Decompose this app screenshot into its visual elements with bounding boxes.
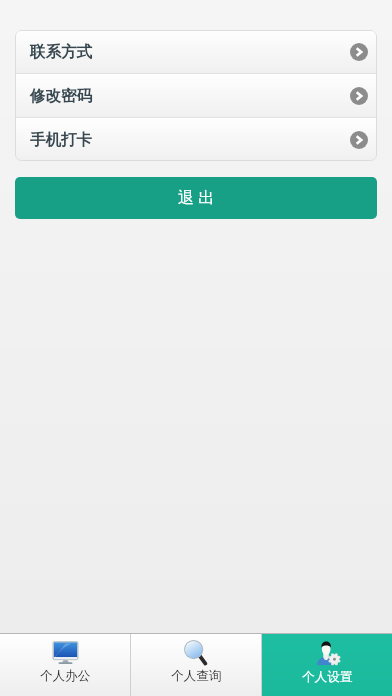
staticText: 个人办公 bbox=[40, 668, 91, 684]
button[interactable]: Personal settings bbox=[262, 634, 392, 696]
staticText: 手机打卡 bbox=[30, 130, 92, 150]
staticText: 退 出 bbox=[178, 186, 215, 208]
button[interactable]: 联系方式 bbox=[15, 30, 377, 73]
button[interactable]: Personal office bbox=[0, 634, 130, 696]
staticText: 个人查询 bbox=[171, 668, 222, 684]
staticText: 修改密码 bbox=[30, 86, 92, 106]
other: Open bbox=[350, 87, 368, 105]
staticText: 联系方式 bbox=[30, 42, 92, 62]
other: Personal query bbox=[183, 641, 211, 664]
other: Open bbox=[350, 131, 368, 149]
other: Open bbox=[350, 43, 368, 61]
button[interactable]: 手机打卡 bbox=[15, 118, 377, 161]
other: Personal office bbox=[52, 641, 79, 664]
staticText: 个人设置 bbox=[302, 669, 353, 685]
other: Personal settings bbox=[314, 641, 342, 665]
button[interactable]: 退 出 bbox=[15, 177, 377, 219]
button[interactable]: 修改密码 bbox=[15, 74, 377, 117]
button[interactable]: Personal query bbox=[131, 634, 261, 696]
